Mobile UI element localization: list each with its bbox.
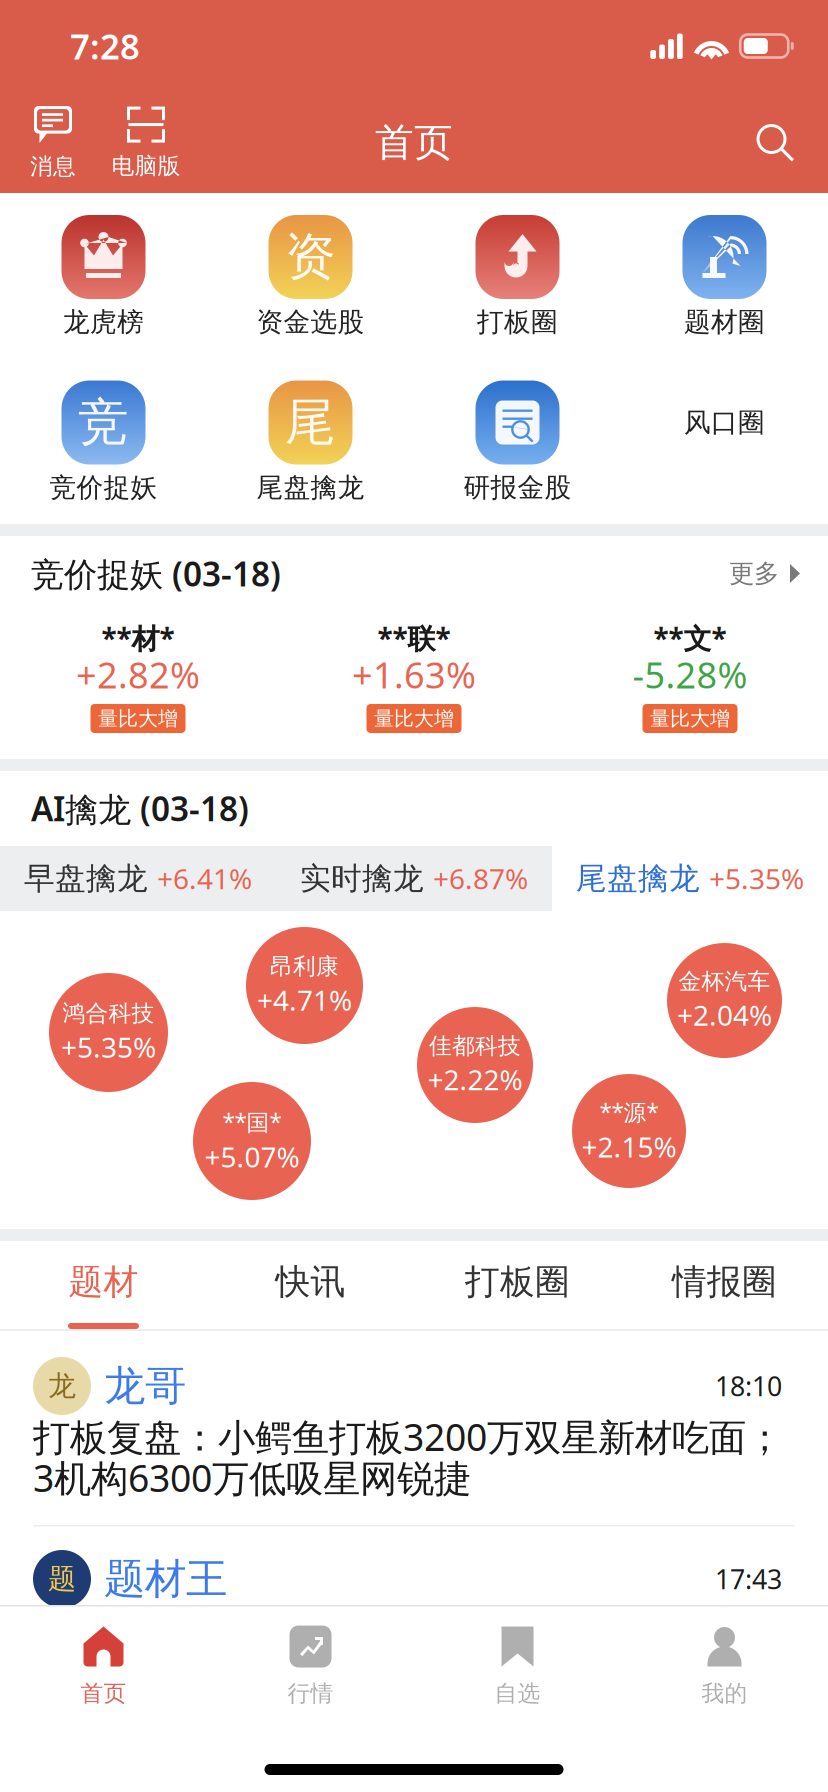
staticText: 3机构6300万低吸星网锐捷 (33, 1453, 471, 1502)
staticText: 尾 (285, 391, 336, 454)
staticText: 首页 (80, 1679, 126, 1707)
staticText: +6.87% (433, 860, 528, 897)
staticText: 竞价捉妖 (49, 471, 157, 504)
button[interactable]: 竞 (0, 358, 207, 524)
staticText: -5.28% (632, 651, 747, 698)
staticText: 昂利康 (270, 952, 339, 980)
button[interactable]: 消息 (9, 92, 97, 193)
staticText: +2.22% (427, 1061, 522, 1098)
staticText: **材* (101, 619, 174, 657)
staticText: 尾盘擒龙 (256, 471, 364, 504)
staticText: 风口圈 (684, 406, 765, 439)
button[interactable]: 打板圈 (414, 193, 621, 359)
staticText: +2.04% (677, 996, 772, 1033)
staticText: +2.82% (76, 651, 200, 698)
button[interactable]: 自选 (414, 1606, 621, 1718)
staticText: 打板圈 (477, 306, 558, 338)
staticText: 打板圈 (465, 1261, 570, 1303)
button[interactable]: 研报金股 (414, 358, 621, 524)
button[interactable]: 搜索 (730, 92, 820, 193)
button[interactable]: 资 (207, 193, 414, 359)
button[interactable]: 题 (0, 1526, 828, 1613)
staticText: 资金选股 (256, 306, 364, 338)
staticText: 佳都科技 (429, 1032, 521, 1060)
staticText: 龙哥 (104, 1361, 186, 1411)
staticText: 题材王 (104, 1554, 227, 1604)
staticText: +2.15% (581, 1128, 676, 1165)
staticText: 龙虎榜 (63, 306, 144, 338)
staticText: +6.41% (157, 860, 252, 897)
staticText: 金杯汽车 (678, 967, 770, 995)
button[interactable]: 题材 (0, 1241, 207, 1329)
button[interactable]: 题材圈 (621, 193, 828, 359)
staticText: 行情 (287, 1679, 333, 1707)
staticText: 首页 (375, 119, 453, 166)
staticText: 7:28 (70, 23, 140, 69)
staticText: 更多 (729, 558, 779, 589)
button[interactable]: 竞价捉妖 (03-18) (0, 536, 828, 611)
staticText: 量比大增 (374, 706, 454, 731)
button[interactable]: 我的 (621, 1606, 828, 1718)
staticText: 竞 (78, 391, 129, 454)
staticText: 实时擒龙 (300, 860, 424, 897)
staticText: 题材圈 (684, 306, 765, 338)
staticText: 打板复盘：小鳄鱼打板3200万双星新材吃面； (33, 1412, 783, 1461)
staticText: 早盘擒龙 (24, 860, 148, 897)
staticText: +5.35% (709, 860, 804, 897)
staticText: AI擒龙 (03-18) (31, 786, 249, 831)
button[interactable]: 快讯 (207, 1241, 414, 1329)
button[interactable]: 情报圈 (621, 1241, 828, 1329)
staticText: 情报圈 (672, 1261, 777, 1303)
button[interactable]: 电脑版 (97, 92, 195, 193)
staticText: 我的 (701, 1679, 747, 1707)
staticText: 尾盘擒龙 (576, 860, 700, 897)
staticText: 电脑版 (111, 152, 180, 180)
staticText: 鸿合科技 (62, 999, 154, 1027)
button[interactable]: 早盘擒龙 (0, 846, 276, 911)
button[interactable]: 打板圈 (414, 1241, 621, 1329)
staticText: 题 (48, 1562, 76, 1596)
staticText: **国* (222, 1107, 281, 1137)
staticText: **文* (653, 619, 726, 657)
button[interactable]: 首页 (0, 1606, 207, 1718)
staticText: 17:43 (715, 1561, 782, 1597)
staticText: 18:10 (715, 1368, 782, 1404)
staticText: **源* (599, 1097, 658, 1127)
staticText: 研报金股 (463, 471, 571, 504)
staticText: +5.35% (61, 1028, 156, 1065)
staticText: +1.63% (352, 651, 476, 698)
staticText: 量比大增 (98, 706, 178, 731)
staticText: +4.71% (257, 981, 352, 1018)
staticText: 快讯 (275, 1261, 345, 1303)
staticText: +5.07% (204, 1138, 299, 1175)
staticText: 量比大增 (650, 706, 730, 731)
staticText: **联* (377, 619, 450, 657)
button[interactable]: 龙 (0, 1331, 828, 1525)
button[interactable]: 尾 (207, 358, 414, 524)
staticText: 题材 (68, 1261, 138, 1303)
button[interactable]: 尾盘擒龙 (552, 846, 828, 911)
button[interactable]: 风口圈 (621, 358, 828, 524)
staticText: 竞价捉妖 (03-18) (31, 551, 281, 596)
staticText: 自选 (494, 1679, 540, 1707)
staticText: 消息 (30, 153, 76, 180)
button[interactable]: 龙虎榜 (0, 193, 207, 359)
button[interactable]: 实时擒龙 (276, 846, 552, 911)
button[interactable]: 行情 (207, 1606, 414, 1718)
staticText: 资 (285, 226, 336, 288)
staticText: 龙 (48, 1369, 76, 1403)
